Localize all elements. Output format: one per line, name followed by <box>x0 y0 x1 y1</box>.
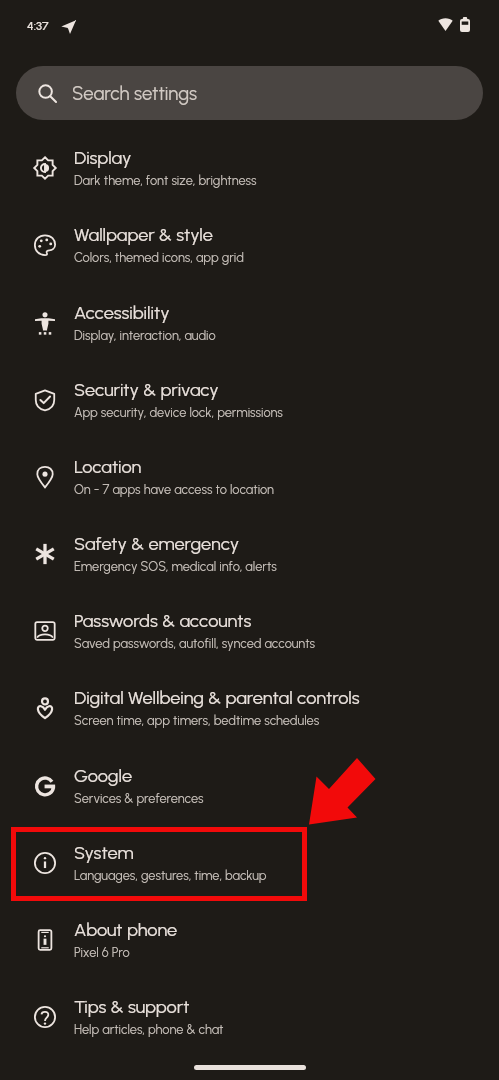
button[interactable]: Accessibility <box>0 284 499 361</box>
staticText: Wallpaper & style <box>74 224 213 246</box>
staticText: Google <box>74 765 133 787</box>
staticText: System <box>74 842 134 864</box>
staticText: Display <box>74 147 132 169</box>
button[interactable]: Display <box>0 129 499 206</box>
button[interactable]: Tips & support <box>0 978 499 1055</box>
staticText: Security & privacy <box>74 379 219 401</box>
button[interactable]: Search settings <box>16 66 483 120</box>
button[interactable]: Safety & emergency <box>0 515 499 592</box>
button[interactable]: Security & privacy <box>0 361 499 438</box>
staticText: Search settings <box>72 82 198 104</box>
staticText: Help articles, phone & chat <box>74 1022 224 1037</box>
staticText: Accessibility <box>74 302 170 324</box>
staticText: 4:37 <box>27 19 49 33</box>
staticText: Emergency SOS, medical info, alerts <box>74 559 277 574</box>
staticText: About phone <box>74 919 178 941</box>
staticText: Passwords & accounts <box>74 610 252 632</box>
button[interactable]: System <box>0 824 499 901</box>
button[interactable]: Google <box>0 747 499 824</box>
staticText: Screen time, app timers, bedtime schedul… <box>74 713 320 728</box>
staticText: Services & preferences <box>74 791 204 806</box>
staticText: On - 7 apps have access to location <box>74 482 274 497</box>
staticText: Languages, gestures, time, backup <box>74 868 267 883</box>
staticText: Tips & support <box>74 996 190 1018</box>
staticText: Colors, themed icons, app grid <box>74 250 244 265</box>
staticText: Pixel 6 Pro <box>74 945 130 960</box>
staticText: Display, interaction, audio <box>74 328 216 343</box>
staticText: Safety & emergency <box>74 533 240 555</box>
staticText: Saved passwords, autofill, synced accoun… <box>74 636 316 651</box>
staticText: Dark theme, font size, brightness <box>74 173 257 188</box>
button[interactable]: Wallpaper & style <box>0 206 499 283</box>
button[interactable]: Passwords & accounts <box>0 592 499 669</box>
button[interactable]: Location <box>0 438 499 515</box>
staticText: Digital Wellbeing & parental controls <box>74 687 360 709</box>
button[interactable]: About phone <box>0 901 499 978</box>
staticText: App security, device lock, permissions <box>74 405 283 420</box>
button[interactable]: Digital Wellbeing & parental controls <box>0 669 499 746</box>
staticText: Location <box>74 456 142 478</box>
